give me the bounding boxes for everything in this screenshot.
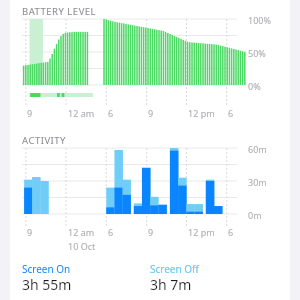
staticText: 12 am — [68, 226, 95, 238]
staticText: 6 — [228, 226, 234, 238]
staticText: 50% — [248, 47, 266, 59]
staticText: 30m — [248, 176, 267, 188]
staticText: 6 — [108, 226, 114, 238]
staticText: 10 Oct — [68, 240, 96, 252]
staticText: 100% — [248, 14, 271, 26]
staticText: Screen Off — [150, 262, 199, 276]
staticText: 0% — [248, 80, 261, 92]
staticText: 9 — [148, 226, 154, 238]
staticText: 12 pm — [188, 226, 215, 238]
button[interactable]: Screen Off — [150, 262, 250, 294]
staticText: 6 — [228, 107, 234, 119]
staticText: 60m — [248, 143, 267, 155]
staticText: 12 am — [68, 107, 95, 119]
staticText: Screen On — [22, 262, 71, 276]
button[interactable]: Screen On — [22, 262, 122, 294]
staticText: 12 pm — [188, 107, 215, 119]
staticText: 9 — [27, 107, 33, 119]
staticText: 3h 7m — [150, 275, 192, 294]
staticText: BATTERY LEVEL — [22, 5, 97, 18]
staticText: 9 — [148, 107, 154, 119]
staticText: ACTIVITY — [22, 134, 66, 147]
staticText: 3h 55m — [22, 275, 72, 294]
staticText: 0m — [248, 209, 262, 221]
staticText: 6 — [108, 107, 114, 119]
staticText: 9 — [27, 226, 33, 238]
